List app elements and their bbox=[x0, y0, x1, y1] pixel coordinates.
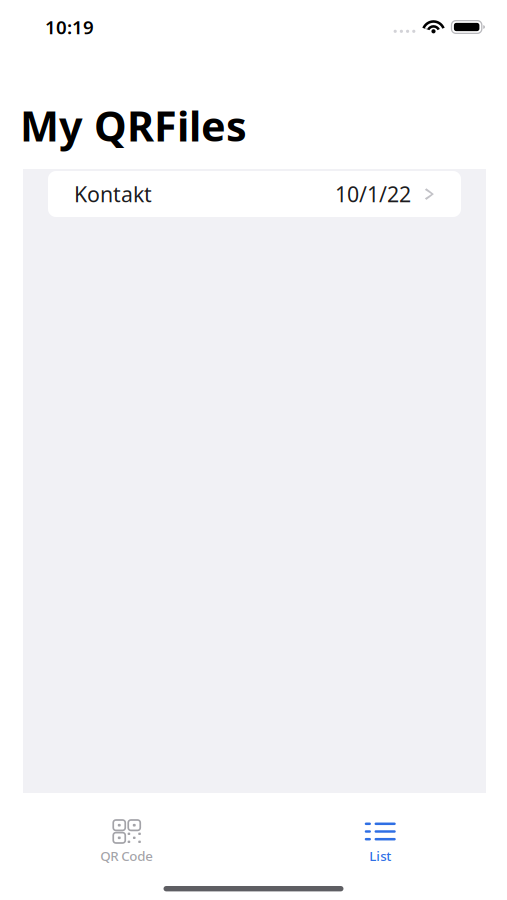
button[interactable]: QR Code bbox=[0, 793, 253, 868]
staticText: List bbox=[369, 847, 391, 865]
button[interactable]: Kontakt bbox=[48, 171, 461, 217]
staticText: 10/1/22 bbox=[335, 180, 411, 208]
staticText: Kontakt bbox=[74, 180, 152, 208]
button[interactable]: List bbox=[253, 793, 507, 868]
staticText: 10:19 bbox=[45, 15, 94, 39]
staticText: QR Code bbox=[100, 847, 153, 865]
staticText: My QRFiles bbox=[20, 98, 247, 153]
